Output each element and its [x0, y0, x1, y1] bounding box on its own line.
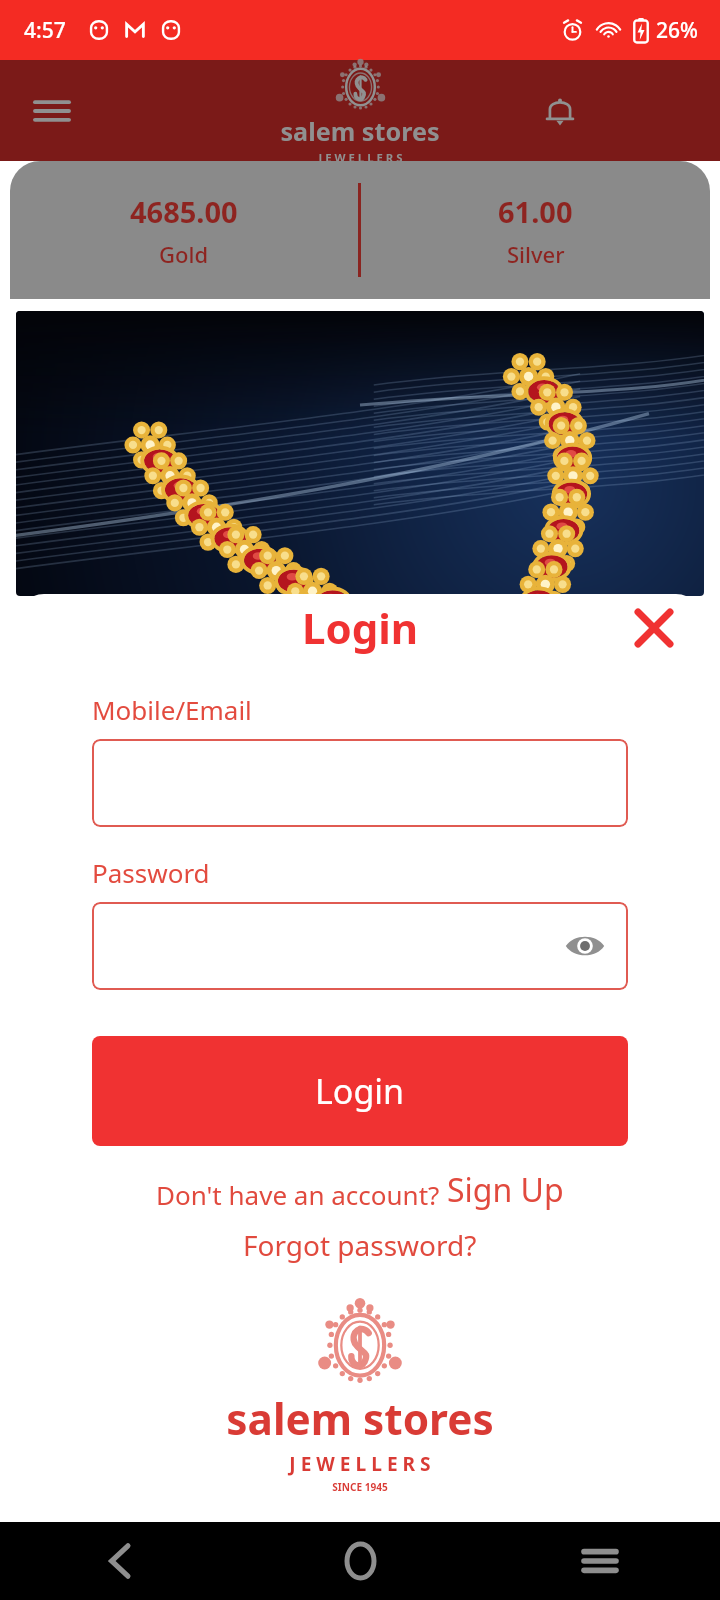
button[interactable]: Recent apps	[480, 1522, 720, 1600]
button[interactable]: Close	[626, 600, 682, 656]
staticText: SINCE 1945	[332, 1480, 388, 1494]
button[interactable]: Menu	[24, 83, 80, 139]
staticText: Gold	[159, 239, 209, 269]
button[interactable]: Login	[92, 1036, 628, 1146]
staticText: J E W E L L E R S	[289, 1451, 431, 1477]
button[interactable]: Show password	[560, 921, 610, 971]
staticText: salem stores	[226, 1390, 494, 1448]
staticText: 26%	[656, 16, 698, 45]
staticText: Login	[302, 599, 419, 656]
staticText: Don't have an account?	[156, 1177, 447, 1212]
staticText: Mobile/Email	[92, 692, 252, 727]
staticText: 4:57	[24, 16, 66, 45]
staticText: Sign Up	[447, 1168, 564, 1212]
button[interactable]: Back	[0, 1522, 240, 1600]
button[interactable]: Sign Up	[447, 1168, 564, 1212]
staticText: Forgot password?	[243, 1226, 477, 1264]
staticText: J E W E L L E R S	[318, 150, 403, 161]
staticText: salem stores	[280, 114, 440, 148]
button[interactable]: Notifications	[532, 83, 588, 139]
staticText: 61.00	[498, 192, 573, 231]
button[interactable]: Forgot password?	[243, 1226, 477, 1264]
button[interactable]	[92, 739, 628, 827]
button[interactable]: Home	[240, 1522, 480, 1600]
staticText: Silver	[507, 239, 565, 269]
staticText: 4685.00	[130, 192, 238, 231]
button[interactable]: Show password	[92, 902, 628, 990]
staticText: Password	[92, 855, 210, 890]
staticText: Login	[315, 1068, 405, 1114]
